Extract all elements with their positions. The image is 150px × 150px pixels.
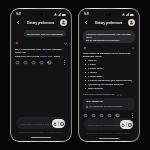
button[interactable]: Regenerate [107, 113, 112, 118]
button[interactable]: Remember that I'm vegetarian [27, 32, 63, 35]
button[interactable]: Regenerate [39, 60, 44, 65]
button[interactable]: Share [99, 113, 104, 118]
staticText: 9:41 [84, 12, 90, 16]
staticText: Ok, I'll remember that. You can manage w… [15, 47, 67, 53]
staticText: 3 cloves garlic [88, 67, 103, 70]
button[interactable]: More options [62, 60, 67, 65]
button[interactable]: Type, talk, or share a photo [16, 117, 66, 129]
staticText: Gemini can make mistakes, so double-chec… [86, 132, 132, 135]
staticText: Type, talk, or share a photo [88, 123, 120, 126]
button[interactable]: Expand [63, 41, 67, 45]
staticText: 8 ounces mushrooms (any variety you like… [88, 79, 132, 82]
button[interactable]: Dislike [23, 60, 28, 65]
button[interactable]: More options [130, 113, 135, 118]
staticText: Sure! Here's an ingredient list for vege… [83, 52, 131, 55]
button[interactable]: Google [115, 113, 120, 118]
staticText: 9:41 [16, 12, 22, 16]
button[interactable]: Expand [131, 46, 135, 50]
staticText: 2 carrots [88, 71, 98, 74]
staticText: Gemini can make mistakes, so double-chec… [18, 131, 64, 134]
button[interactable]: Profile [128, 19, 135, 26]
staticText: Olive oil [88, 59, 97, 62]
button[interactable]: Profile [60, 19, 67, 26]
button[interactable]: Share [31, 60, 36, 65]
button[interactable]: Voice input [120, 120, 133, 129]
staticText: Bolognese sauce: [83, 55, 102, 58]
button[interactable]: Dislike [91, 113, 96, 118]
button[interactable]: Saved info [40, 54, 53, 57]
staticText: 1(28-ounce) can crushed tomatoes [88, 83, 124, 86]
button[interactable]: Voice input [52, 119, 65, 128]
staticText: Dietary preferences [95, 21, 123, 25]
staticText: I'm vegetarian and don't eat meat [89, 105, 123, 108]
button[interactable]: Your saved info [83, 98, 135, 110]
staticText: Remember that I'm vegetarian [27, 32, 63, 35]
staticText: saved for you on the [15, 54, 40, 57]
staticText: Dietary preferences [27, 21, 55, 25]
button[interactable]: Google [47, 60, 52, 65]
staticText: 2 celery stalks [88, 75, 103, 78]
staticText: Your saved info [86, 100, 103, 103]
button[interactable]: Like [15, 60, 20, 65]
staticText: Found your dietary preference [83, 93, 115, 96]
button[interactable]: Back [83, 19, 90, 26]
button[interactable]: I want to make Bolognese. Can you give m… [86, 32, 132, 41]
staticText: 1 onion [88, 63, 96, 66]
staticText: Dried oregano [88, 87, 103, 90]
staticText: page. [53, 54, 61, 57]
button[interactable]: Like [83, 113, 88, 118]
staticText: I want to make Bolognese. Can you give m… [86, 32, 132, 41]
staticText: Type, talk, or share a photo [20, 122, 52, 125]
button[interactable]: Type, talk, or share a photo [84, 118, 134, 130]
button[interactable]: Back [15, 19, 22, 26]
